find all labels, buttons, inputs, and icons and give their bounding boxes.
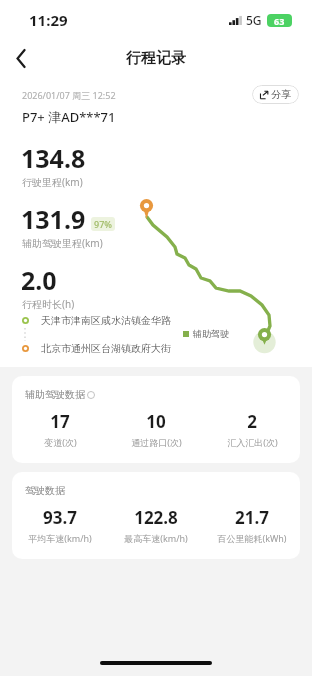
staticText: 21.7 bbox=[235, 506, 269, 529]
staticText: 汇入汇出(次) bbox=[227, 436, 278, 448]
staticText: 63 bbox=[274, 15, 285, 27]
staticText: 122.8 bbox=[134, 506, 178, 529]
staticText: 通过路口(次) bbox=[131, 436, 182, 448]
button[interactable]: Back bbox=[0, 40, 42, 76]
staticText: 最高车速(km/h) bbox=[124, 532, 188, 544]
staticText: 97% bbox=[94, 218, 112, 230]
staticText: 17 bbox=[50, 410, 70, 433]
button[interactable]: 分享 bbox=[252, 85, 299, 104]
staticText: 变道(次) bbox=[44, 436, 77, 448]
staticText: 行程记录 bbox=[126, 49, 186, 68]
staticText: P7+ 津AD***71 bbox=[22, 108, 116, 126]
staticText: 2026/01/07 周三 12:52 bbox=[22, 89, 116, 101]
button[interactable]: 驾驶数据 bbox=[12, 472, 300, 559]
staticText: 百公里能耗(kWh) bbox=[217, 532, 287, 544]
staticText: 2 bbox=[247, 410, 257, 433]
staticText: 天津市津南区咸水沽镇金华路 bbox=[41, 314, 171, 327]
staticText: 辅助驾驶 bbox=[193, 328, 229, 339]
staticText: 北京市通州区台湖镇政府大街 bbox=[41, 342, 171, 355]
staticText: 10 bbox=[146, 410, 166, 433]
staticText: 134.8 bbox=[21, 141, 86, 175]
staticText: 2.0 bbox=[21, 263, 57, 297]
staticText: 11:29 bbox=[29, 10, 68, 30]
staticText: 平均车速(km/h) bbox=[28, 532, 92, 544]
staticText: 行驶里程(km) bbox=[22, 175, 83, 189]
staticText: 辅助驾驶数据 bbox=[25, 388, 85, 401]
staticText: 辅助驾驶里程(km) bbox=[22, 236, 103, 250]
staticText: 131.9 bbox=[21, 202, 86, 236]
button[interactable]: 辅助驾驶数据 bbox=[12, 376, 300, 463]
staticText: 驾驶数据 bbox=[25, 484, 65, 497]
staticText: 5G bbox=[246, 12, 262, 28]
staticText: 93.7 bbox=[43, 506, 77, 529]
staticText: 行程时长(h) bbox=[22, 297, 75, 311]
staticText: 分享 bbox=[271, 88, 291, 101]
